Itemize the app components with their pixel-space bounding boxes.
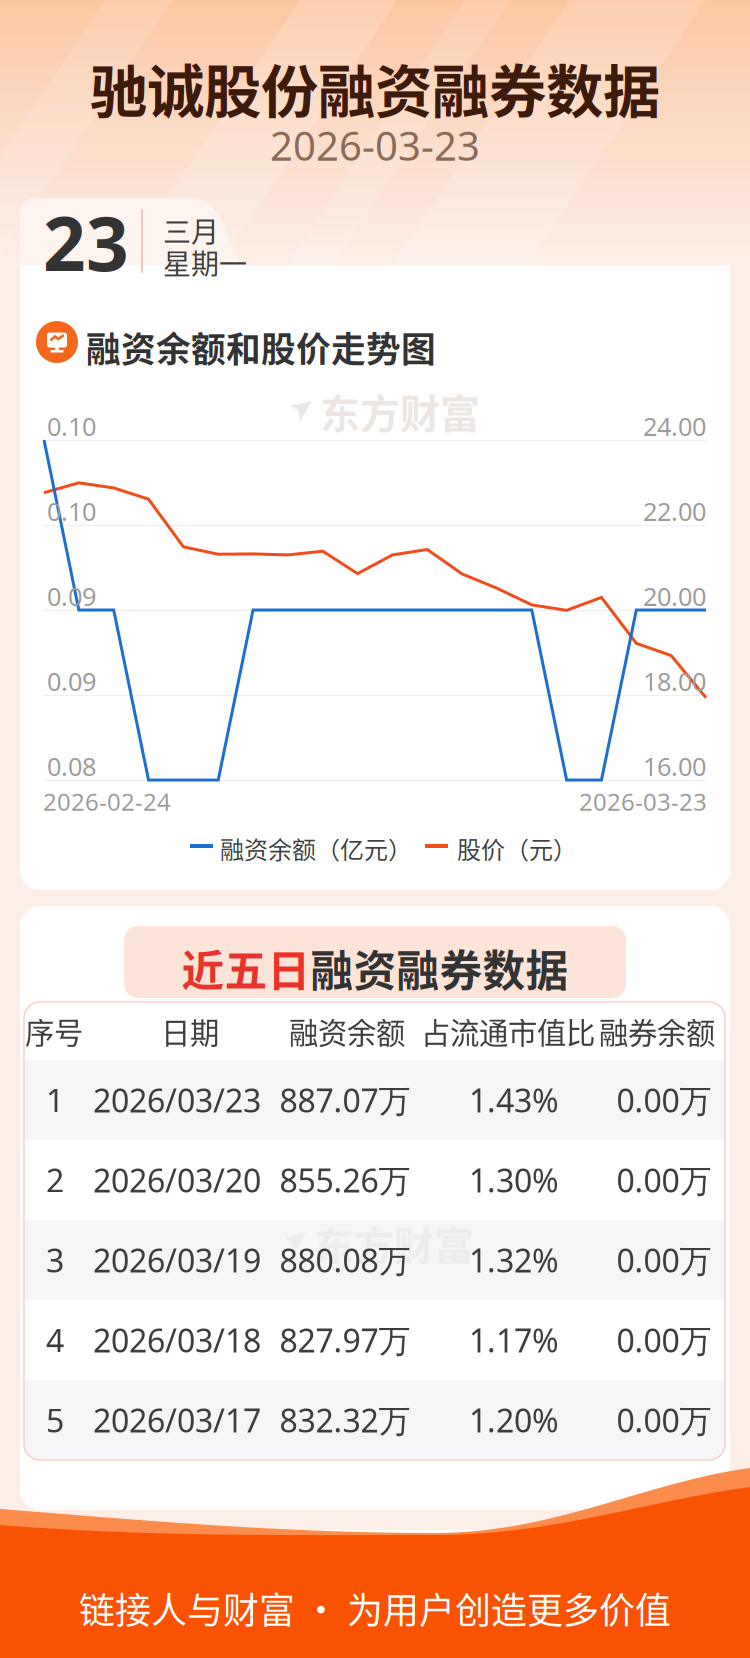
staticText: 0.00万 [616,1078,711,1122]
staticText: 0.00万 [616,1318,711,1362]
button[interactable]: 4 [24,1300,725,1380]
staticText: 0.10 [47,494,96,528]
staticText: 0.08 [47,749,96,783]
button[interactable]: 5 [24,1380,725,1460]
staticText: 融资余额（亿元） [220,831,412,866]
staticText: 855.26万 [279,1158,410,1202]
button[interactable]: 23 [20,198,300,272]
staticText: 0.09 [47,579,96,613]
staticText: 24.00 [643,409,706,443]
staticText: 2026/03/18 [93,1318,261,1362]
staticText: 2026/03/17 [93,1398,261,1442]
staticText: 东方财富 [320,382,480,440]
staticText: 2026/03/20 [93,1158,261,1202]
staticText: 股价（元） [457,831,577,866]
staticText: 4 [46,1318,64,1362]
staticText: 日期 [161,1010,219,1052]
staticText: 2026/03/19 [93,1238,261,1282]
staticText: 1.17% [469,1318,559,1362]
staticText: 驰诚股份融资融券数据 [90,46,660,129]
button[interactable]: 1 [24,1060,725,1140]
staticText: 887.07万 [279,1078,410,1122]
staticText: 2026-03-23 [579,785,707,818]
staticText: 1.30% [469,1158,559,1202]
staticText: 22.00 [643,494,706,528]
staticText: 832.32万 [279,1398,410,1442]
staticText: 融资融券数据 [310,937,568,999]
staticText: 20.00 [643,579,706,613]
staticText: 近五日 [181,937,310,999]
staticText: 0.00万 [616,1398,711,1442]
staticText: 0.00万 [616,1158,711,1202]
staticText: 链接人与财富 · 为用户创造更多价值 [79,1582,671,1634]
staticText: 序号 [25,1010,83,1052]
staticText: 880.08万 [279,1238,410,1282]
button[interactable]: 2 [24,1140,725,1220]
staticText: 2026-03-23 [270,118,480,172]
staticText: 16.00 [643,749,706,783]
staticText: 2026-02-24 [43,785,171,818]
staticText: 1.32% [469,1238,559,1282]
staticText: 23 [43,191,129,293]
staticText: 5 [46,1398,64,1442]
staticText: 1.43% [469,1078,559,1122]
staticText: 827.97万 [279,1318,410,1362]
staticText: 0.00万 [616,1238,711,1282]
staticText: 3 [46,1238,64,1282]
staticText: 东方财富 [314,1214,474,1272]
staticText: 融资余额 [289,1010,405,1052]
staticText: 0.09 [47,664,96,698]
staticText: 占流通市值比 [421,1010,595,1052]
button[interactable]: 3 [24,1220,725,1300]
staticText: 0.10 [47,409,96,443]
staticText: 18.00 [643,664,706,698]
staticText: 1 [46,1078,64,1122]
staticText: 2 [46,1158,64,1202]
staticText: 三月 [163,210,219,250]
staticText: 星期一 [163,242,247,282]
staticText: 2026/03/23 [93,1078,261,1122]
staticText: 融资余额和股价走势图 [86,322,436,372]
staticText: 1.20% [469,1398,559,1442]
staticText: 融券余额 [599,1010,715,1052]
